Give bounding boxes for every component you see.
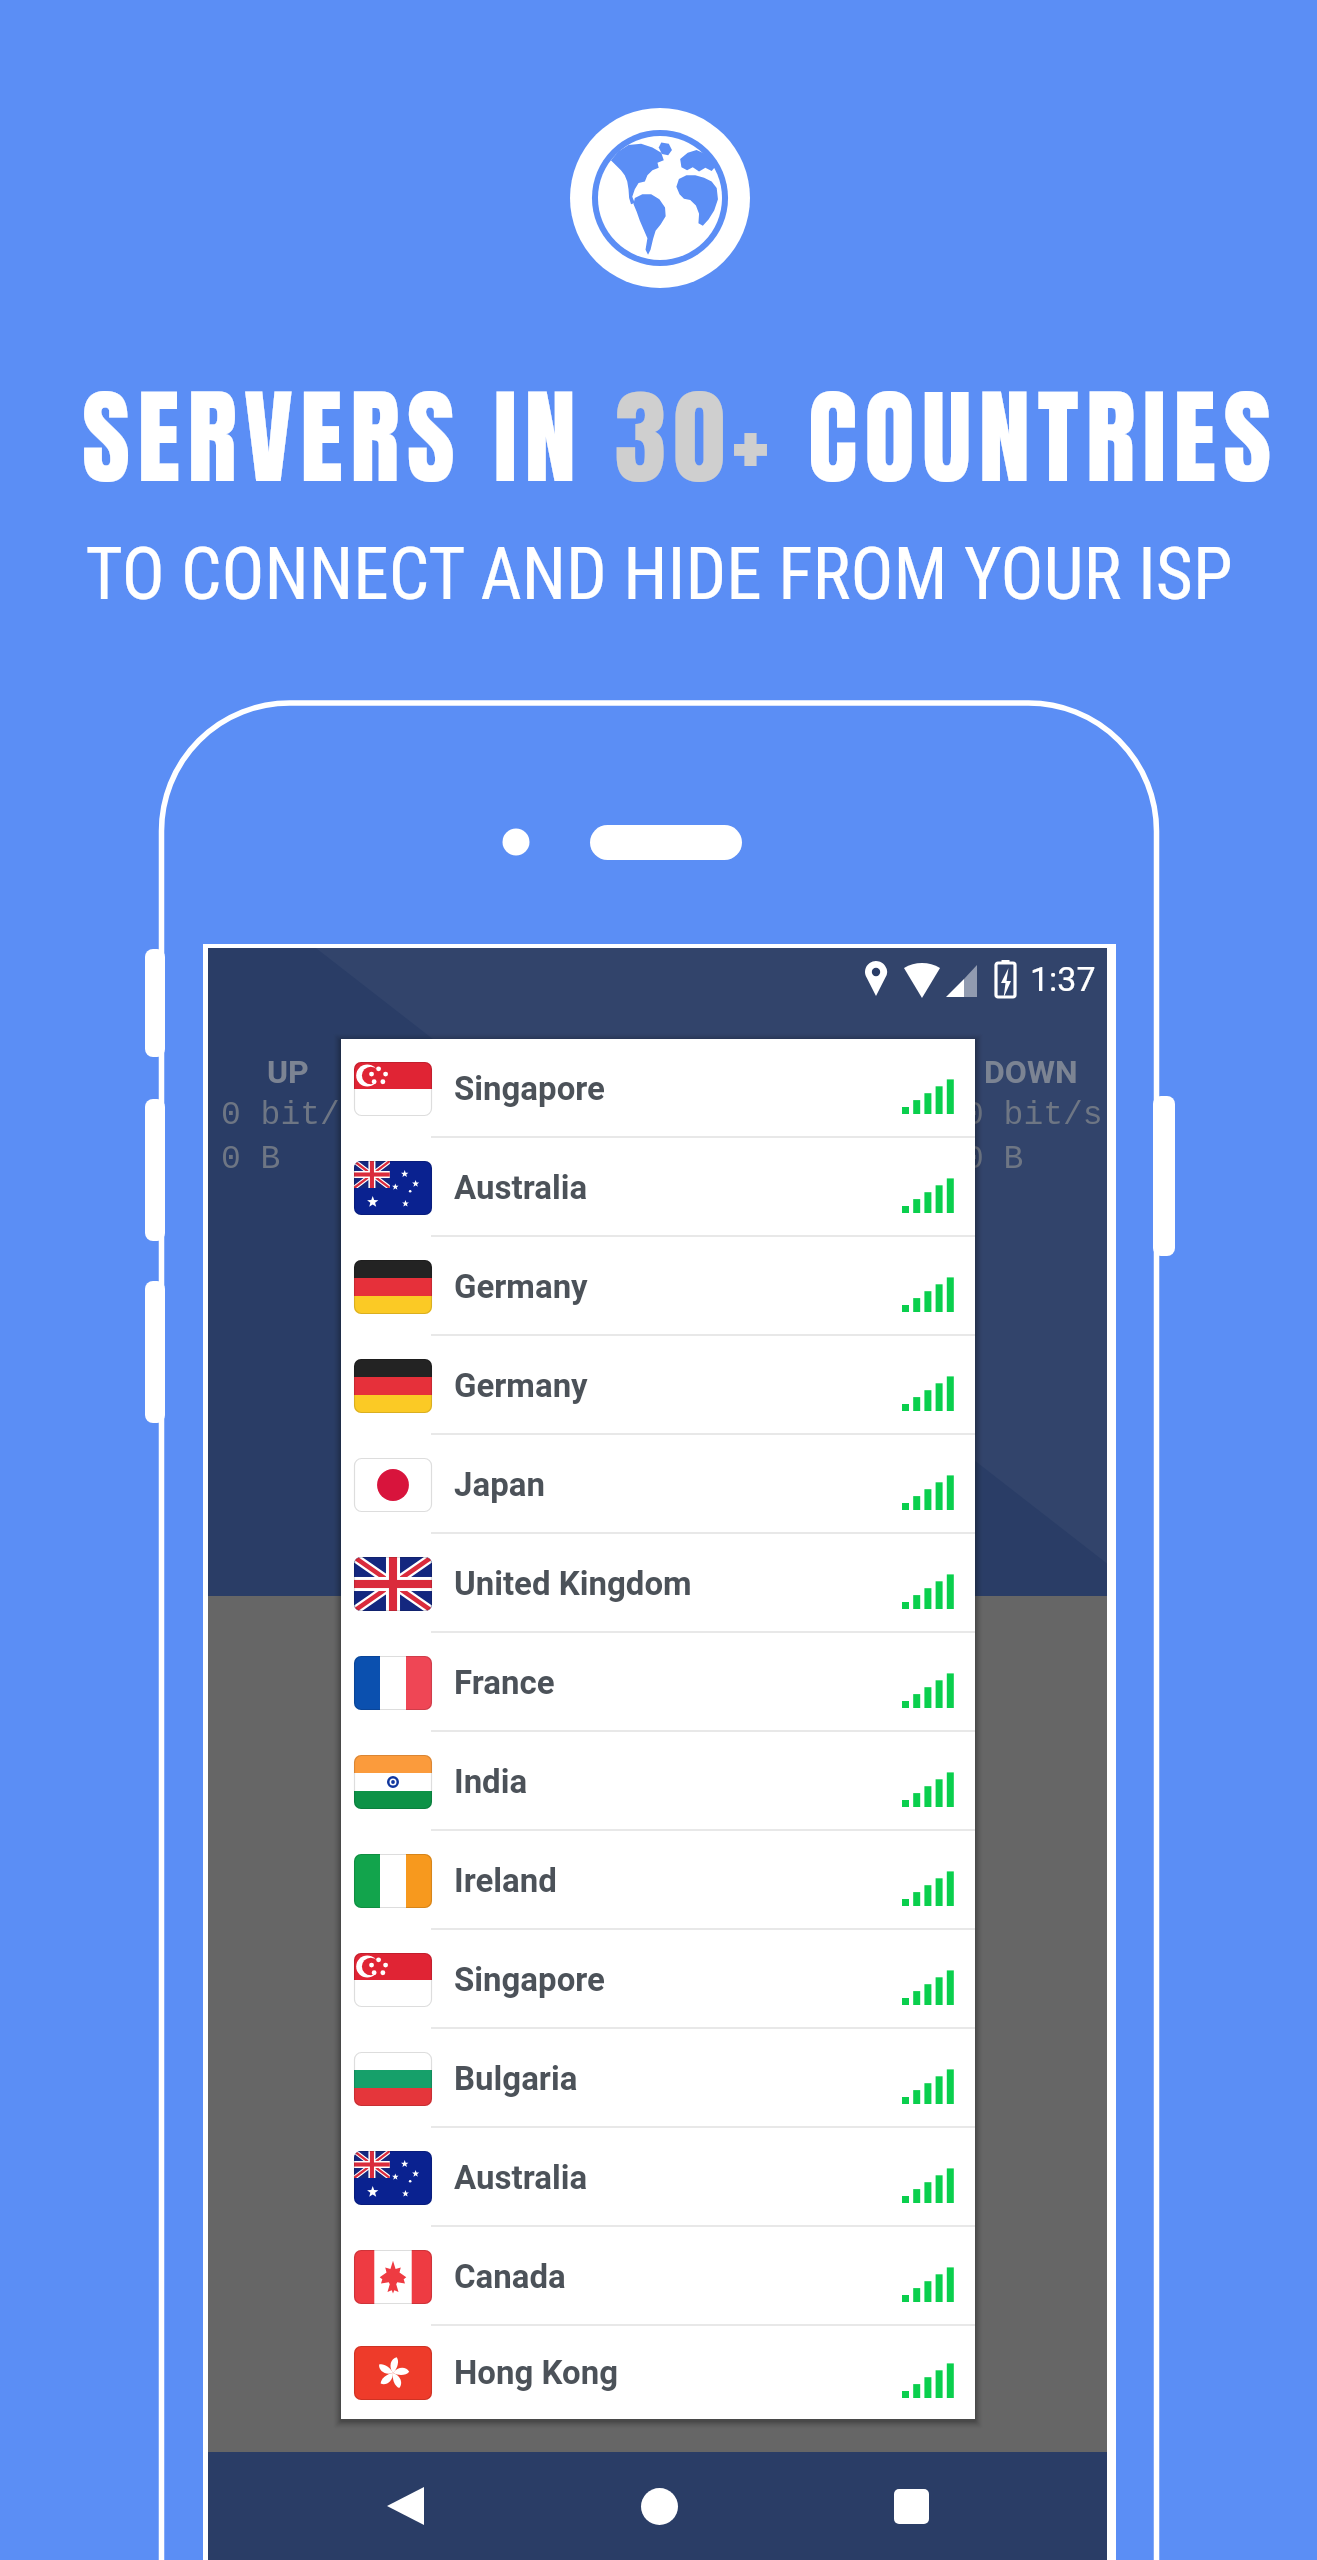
staticText: Australia	[454, 2158, 588, 2197]
staticText: Canada	[454, 2257, 566, 2296]
staticText: Singapore	[454, 1960, 605, 1999]
staticText: Germany	[454, 1366, 588, 1405]
staticText: TO CONNECT AND HIDE FROM YOUR ISP	[85, 533, 1233, 617]
button[interactable]: France	[341, 1633, 975, 1732]
button[interactable]: Singapore	[341, 1930, 975, 2029]
button[interactable]: Germany	[341, 1237, 975, 1336]
staticText: United Kingdom	[454, 1564, 692, 1603]
staticText: 0 B	[964, 1141, 1024, 1178]
staticText: 1:37	[1030, 959, 1096, 999]
staticText: DOWN	[984, 1053, 1078, 1091]
button[interactable]: India	[341, 1732, 975, 1831]
button[interactable]: Germany	[341, 1336, 975, 1435]
staticText: Bulgaria	[454, 2059, 578, 2098]
staticText: 0 bit/s	[221, 1097, 360, 1134]
button[interactable]: Back	[350, 2452, 460, 2560]
button[interactable]: United Kingdom	[341, 1534, 975, 1633]
button[interactable]: Bulgaria	[341, 2029, 975, 2128]
button[interactable]: Ireland	[341, 1831, 975, 1930]
staticText: India	[454, 1762, 528, 1801]
staticText: 0 bit/s	[964, 1097, 1103, 1134]
staticText: UP	[267, 1053, 309, 1091]
button[interactable]: Home	[604, 2452, 714, 2560]
staticText: Japan	[454, 1465, 545, 1504]
staticText: Australia	[454, 1168, 588, 1207]
button[interactable]: Hong Kong	[341, 2326, 975, 2419]
staticText: France	[454, 1663, 555, 1702]
staticText: SERVERS IN 30+ COUNTRIES	[82, 359, 1279, 516]
button[interactable]: Japan	[341, 1435, 975, 1534]
staticText: Hong Kong	[454, 2353, 619, 2392]
button[interactable]: Australia	[341, 1138, 975, 1237]
button[interactable]: Recent apps	[856, 2452, 966, 2560]
staticText: Ireland	[454, 1861, 557, 1900]
button[interactable]: Australia	[341, 2128, 975, 2227]
button[interactable]: Singapore	[341, 1039, 975, 1138]
button[interactable]: Canada	[341, 2227, 975, 2326]
staticText: 0 B	[221, 1141, 281, 1178]
staticText: Germany	[454, 1267, 588, 1306]
staticText: Singapore	[454, 1069, 605, 1108]
